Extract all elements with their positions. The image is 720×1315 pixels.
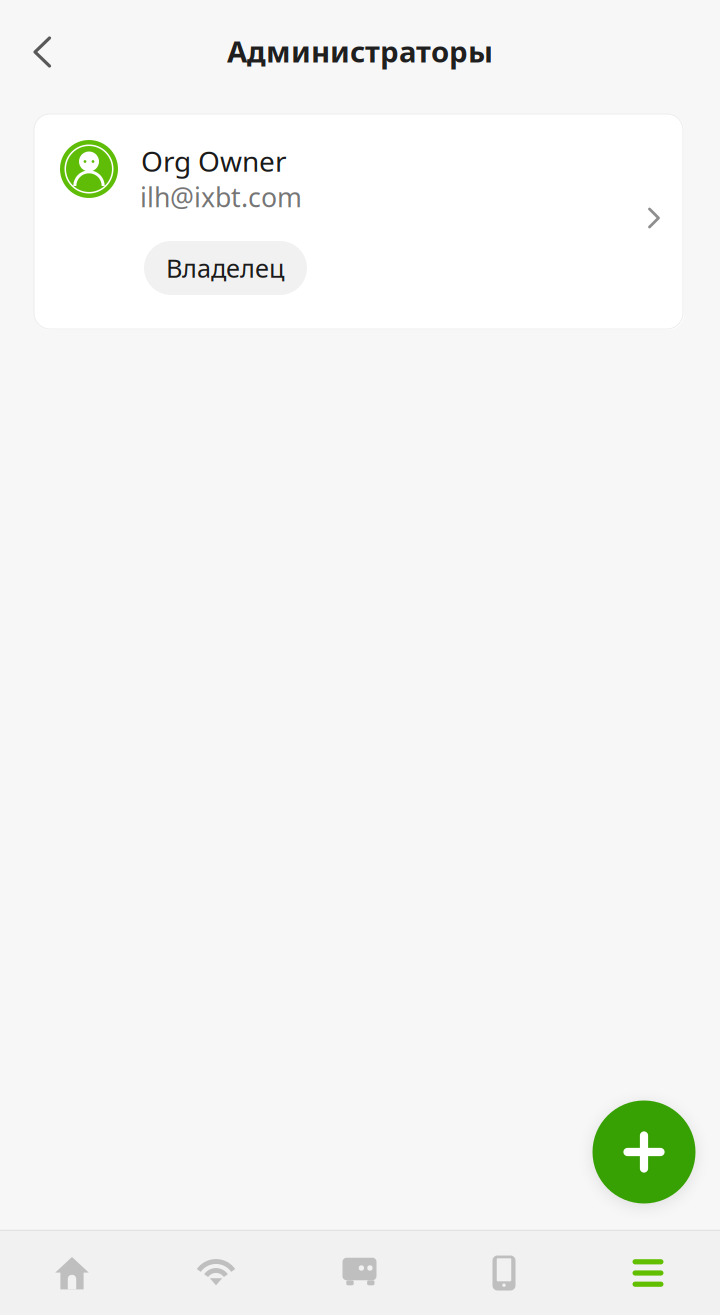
button[interactable]: Add administrator [592,1100,695,1203]
staticText: ilh@ixbt.com [140,179,302,215]
staticText: Org Owner [141,142,287,180]
button[interactable]: Devices [432,1231,576,1315]
button[interactable]: Menu [576,1231,720,1315]
staticText: Владелец [166,251,285,285]
button[interactable]: Back [7,17,77,87]
button[interactable]: Equipment [288,1231,432,1315]
staticText: Администраторы [227,31,493,70]
button[interactable]: Org Owner [34,114,684,330]
button[interactable]: Wi-Fi [144,1231,288,1315]
button[interactable]: Home [0,1231,144,1315]
